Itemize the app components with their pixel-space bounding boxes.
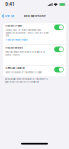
button[interactable]: Send Last Location [3,65,66,76]
staticText: Automatically send the location of this … [5,78,48,83]
staticText: Find this device even when it is offline… [5,51,44,56]
staticText: Locate, lock, or erase this iPhone and s… [5,29,49,37]
staticText: 9:41 [5,2,14,7]
button[interactable]: Find My [0,13,14,19]
staticText: Send the location of this iPhone to Appl… [5,71,42,74]
button[interactable]: Find My network [3,45,66,65]
staticText: Send Last Location [5,67,24,70]
staticText: Find My iPhone [5,24,21,27]
staticText: A Find My iPhone Privacy [5,39,27,41]
button[interactable]: Find My iPhone [3,23,66,45]
staticText: Find My [5,14,14,18]
staticText: Find My iPhone [24,14,45,18]
staticText: Find My network [5,46,22,49]
